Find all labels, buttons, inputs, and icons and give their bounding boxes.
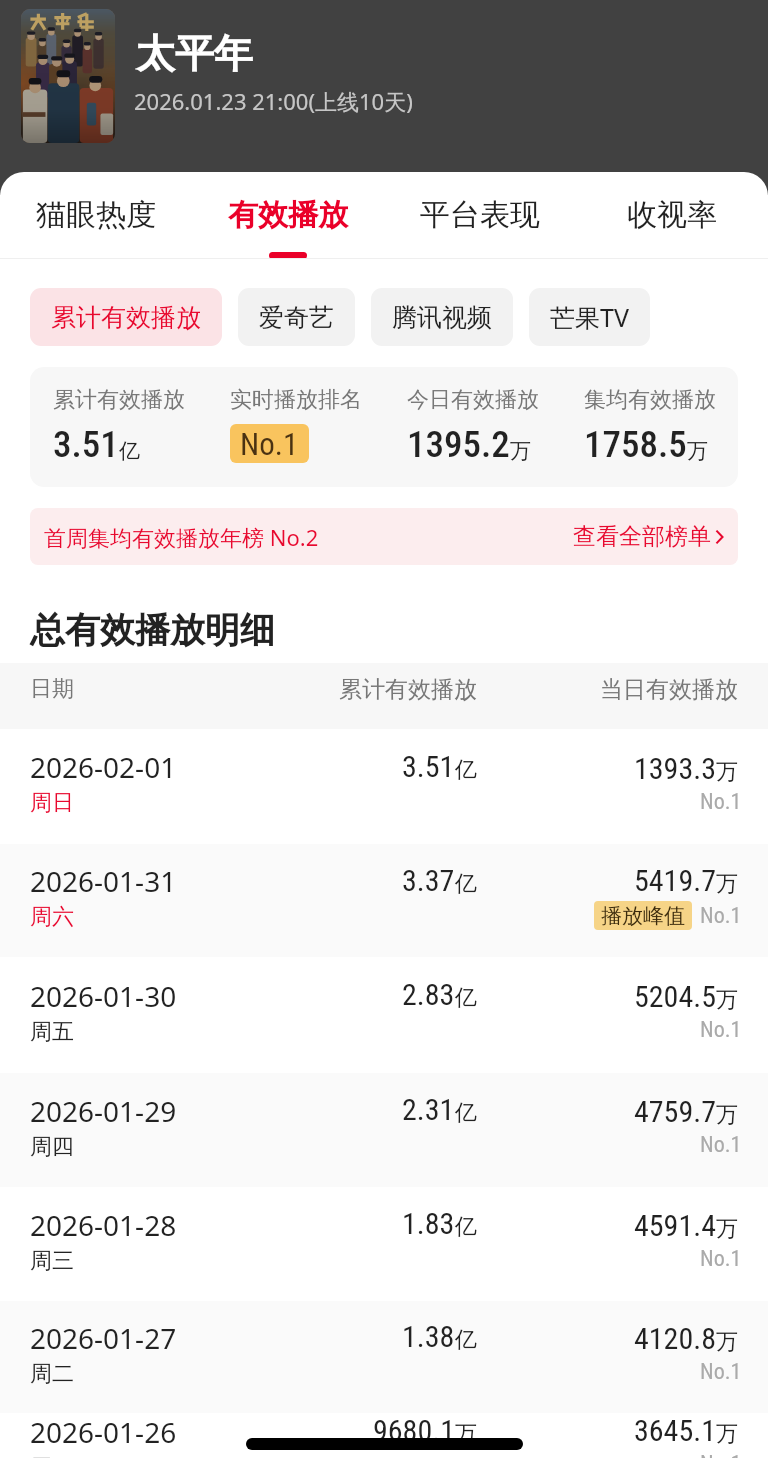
staticText: 播放峰值 <box>601 903 685 929</box>
button[interactable]: 猫眼热度 <box>0 172 192 259</box>
staticText: No.1 <box>700 1132 742 1158</box>
button[interactable]: 2026-01-29 <box>0 1073 768 1187</box>
staticText: 1395.2 <box>407 423 510 466</box>
staticText: 亿 <box>455 756 477 784</box>
staticText: 2026-02-01 <box>30 748 177 786</box>
staticText: 2.83 <box>402 977 455 1012</box>
staticText: 今日有效播放 <box>407 386 539 414</box>
staticText: 平台表现 <box>420 196 540 234</box>
staticText: 2026-01-27 <box>30 1319 177 1357</box>
staticText: 万 <box>716 1420 738 1448</box>
staticText: 腾讯视频 <box>392 302 492 333</box>
button[interactable]: 累计有效播放 <box>30 288 222 346</box>
button[interactable]: 2026-01-26 <box>0 1413 768 1466</box>
staticText: 2026-01-30 <box>30 977 177 1015</box>
staticText: 2026.01.23 21:00(上线10天) <box>134 86 413 116</box>
staticText: No.1 <box>700 789 742 815</box>
staticText: 2.31 <box>402 1092 455 1127</box>
button[interactable]: 有效播放 <box>192 172 384 259</box>
staticText: 亿 <box>455 1099 477 1127</box>
staticText: 万 <box>687 438 708 464</box>
staticText: 2026-01-31 <box>30 862 177 900</box>
staticText: No.1 <box>700 1451 742 1458</box>
staticText: 日期 <box>30 675 287 703</box>
button[interactable]: 平台表现 <box>384 172 576 259</box>
staticText: 芒果TV <box>550 300 629 334</box>
staticText: 收视率 <box>627 196 717 234</box>
staticText: 周四 <box>30 1133 74 1161</box>
staticText: 亿 <box>455 870 477 898</box>
staticText: 万 <box>716 1101 738 1129</box>
button[interactable]: 首周集均有效播放年榜 No.2 <box>30 508 738 565</box>
staticText: 3.51 <box>53 423 119 466</box>
staticText: 亿 <box>455 1326 477 1354</box>
staticText: 4120.8 <box>634 1321 716 1356</box>
staticText: No.1 <box>240 426 299 462</box>
staticText: 总有效播放明细 <box>30 608 275 652</box>
button[interactable]: 腾讯视频 <box>371 288 513 346</box>
staticText: 1.38 <box>402 1319 455 1354</box>
staticText: No.1 <box>700 1359 742 1385</box>
staticText: No.1 <box>700 1017 742 1043</box>
staticText: 实时播放排名 <box>230 386 362 414</box>
staticText: 万 <box>716 1328 738 1356</box>
staticText: 1.83 <box>402 1206 455 1241</box>
staticText: 万 <box>716 870 738 898</box>
button[interactable]: 收视率 <box>576 172 768 259</box>
button[interactable]: 2026-01-30 <box>0 957 768 1073</box>
staticText: 周三 <box>30 1247 74 1275</box>
staticText: 周六 <box>30 903 74 931</box>
staticText: 4591.4 <box>634 1208 716 1243</box>
staticText: 亿 <box>455 984 477 1012</box>
staticText: 3.51 <box>402 749 455 784</box>
staticText: 累计有效播放 <box>339 675 477 704</box>
staticText: 万 <box>716 986 738 1014</box>
staticText: 亿 <box>119 438 140 464</box>
button[interactable]: 2026-02-01 <box>0 729 768 844</box>
staticText: 4759.7 <box>634 1094 716 1129</box>
staticText: 首周集均有效播放年榜 No.2 <box>44 522 319 552</box>
staticText: 爱奇艺 <box>259 302 334 333</box>
staticText: 1758.5 <box>584 423 687 466</box>
staticText: 万 <box>716 1215 738 1243</box>
staticText: 万 <box>510 438 531 464</box>
staticText: 周五 <box>30 1018 74 1046</box>
staticText: 5419.7 <box>634 863 716 898</box>
button[interactable]: 2026-01-31 <box>0 844 768 957</box>
staticText: 有效播放 <box>228 196 348 234</box>
staticText: 周二 <box>30 1360 74 1388</box>
staticText: 查看全部榜单 <box>573 522 711 551</box>
staticText: 周一 <box>30 1454 74 1458</box>
staticText: 5204.5 <box>634 979 716 1014</box>
button[interactable]: 2026-01-27 <box>0 1301 768 1413</box>
staticText: 周日 <box>30 789 74 817</box>
staticText: 万 <box>716 758 738 786</box>
staticText: 当日有效播放 <box>600 675 738 704</box>
staticText: 2026-01-28 <box>30 1206 177 1244</box>
button[interactable]: 2026-01-28 <box>0 1187 768 1301</box>
staticText: 1393.3 <box>634 751 716 786</box>
button[interactable]: 芒果TV <box>529 288 650 346</box>
button[interactable]: 爱奇艺 <box>238 288 355 346</box>
staticText: 3645.1 <box>634 1413 716 1448</box>
staticText: 9680.1 <box>373 1413 455 1448</box>
staticText: 集均有效播放 <box>584 386 716 414</box>
staticText: 3.37 <box>402 863 455 898</box>
staticText: 亿 <box>455 1213 477 1241</box>
staticText: 万 <box>455 1420 477 1448</box>
staticText: 累计有效播放 <box>53 386 185 414</box>
staticText: 2026-01-29 <box>30 1092 177 1130</box>
staticText: No.1 <box>700 1246 742 1272</box>
staticText: 太平年 <box>136 29 253 78</box>
staticText: No.1 <box>700 903 742 929</box>
staticText: 猫眼热度 <box>36 196 156 234</box>
staticText: 2026-01-26 <box>30 1413 177 1451</box>
staticText: 累计有效播放 <box>51 302 201 333</box>
